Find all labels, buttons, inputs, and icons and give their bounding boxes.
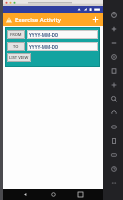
- button[interactable]: Back: [107, 106, 120, 119]
- staticText: FROM: [10, 32, 22, 37]
- staticText: YYYY-MM-DD: [29, 32, 59, 38]
- button[interactable]: Volume down: [107, 36, 120, 49]
- button[interactable]: Home: [49, 190, 58, 199]
- button[interactable]: Screenshot: [107, 78, 120, 91]
- button[interactable]: Rotate right: [107, 64, 120, 77]
- staticText: TO: [13, 44, 19, 49]
- button[interactable]: Location: [107, 120, 120, 133]
- button[interactable]: LIST VIEW: [7, 53, 31, 62]
- staticText: Exercise Activity: [15, 16, 90, 24]
- button[interactable]: History: [107, 162, 120, 175]
- button[interactable]: Back: [21, 190, 30, 199]
- button[interactable]: Battery: [107, 148, 120, 161]
- button[interactable]: YYYY-MM-DD: [27, 30, 98, 39]
- button[interactable]: YYYY-MM-DD: [27, 42, 98, 51]
- button[interactable]: Phone: [107, 134, 120, 147]
- button[interactable]: App logo: [5, 16, 13, 24]
- button[interactable]: Zoom: [107, 92, 120, 105]
- button[interactable]: Rotate left: [107, 50, 120, 63]
- button[interactable]: Volume up: [107, 22, 120, 35]
- button[interactable]: TO: [7, 42, 25, 51]
- staticText: LIST VIEW: [9, 55, 29, 60]
- button[interactable]: Power: [107, 8, 120, 21]
- staticText: YYYY-MM-DD: [29, 44, 59, 50]
- button[interactable]: Add activity: [90, 14, 101, 25]
- button[interactable]: Recent apps: [76, 190, 85, 199]
- button[interactable]: More: [107, 176, 120, 189]
- button[interactable]: FROM: [7, 30, 25, 39]
